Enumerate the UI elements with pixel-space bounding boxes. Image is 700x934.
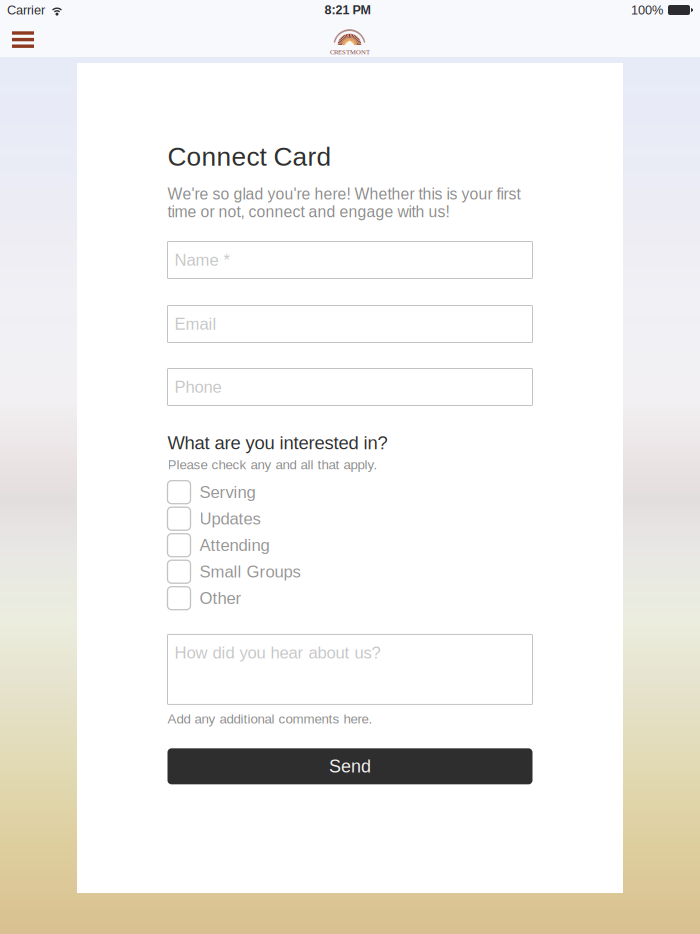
- staticText: Attending: [199, 536, 269, 554]
- button[interactable]: Phone: [167, 368, 532, 405]
- staticText: Carrier: [7, 3, 45, 17]
- staticText: Small Groups: [199, 562, 300, 581]
- staticText: Updates: [199, 509, 260, 528]
- staticText: CRESTMONT: [330, 48, 370, 56]
- staticText: Add any additional comments here.: [167, 711, 372, 726]
- button[interactable]: Name *: [167, 241, 532, 278]
- staticText: Phone: [174, 378, 221, 396]
- staticText: How did you hear about us?: [174, 643, 380, 662]
- button[interactable]: Updates: [167, 505, 532, 532]
- staticText: Email: [174, 315, 216, 333]
- staticText: What are you interested in?: [167, 432, 387, 453]
- button[interactable]: Menu: [0, 23, 48, 54]
- staticText: 100%: [631, 3, 663, 17]
- button[interactable]: Attending: [167, 532, 532, 558]
- staticText: 8:21 PM: [324, 3, 370, 17]
- button[interactable]: Serving: [167, 479, 532, 505]
- staticText: Please check any and all that apply.: [167, 457, 377, 472]
- staticText: Connect Card: [167, 142, 331, 171]
- button[interactable]: How did you hear about us?: [167, 634, 532, 704]
- staticText: We're so glad you're here! Whether this …: [167, 185, 520, 220]
- button[interactable]: Small Groups: [167, 558, 532, 585]
- staticText: Serving: [199, 483, 255, 501]
- staticText: Name *: [174, 251, 229, 269]
- staticText: Send: [329, 756, 371, 776]
- button[interactable]: Email: [167, 305, 532, 342]
- staticText: Other: [199, 589, 241, 607]
- button[interactable]: Other: [167, 585, 532, 611]
- button[interactable]: Send: [167, 748, 532, 784]
